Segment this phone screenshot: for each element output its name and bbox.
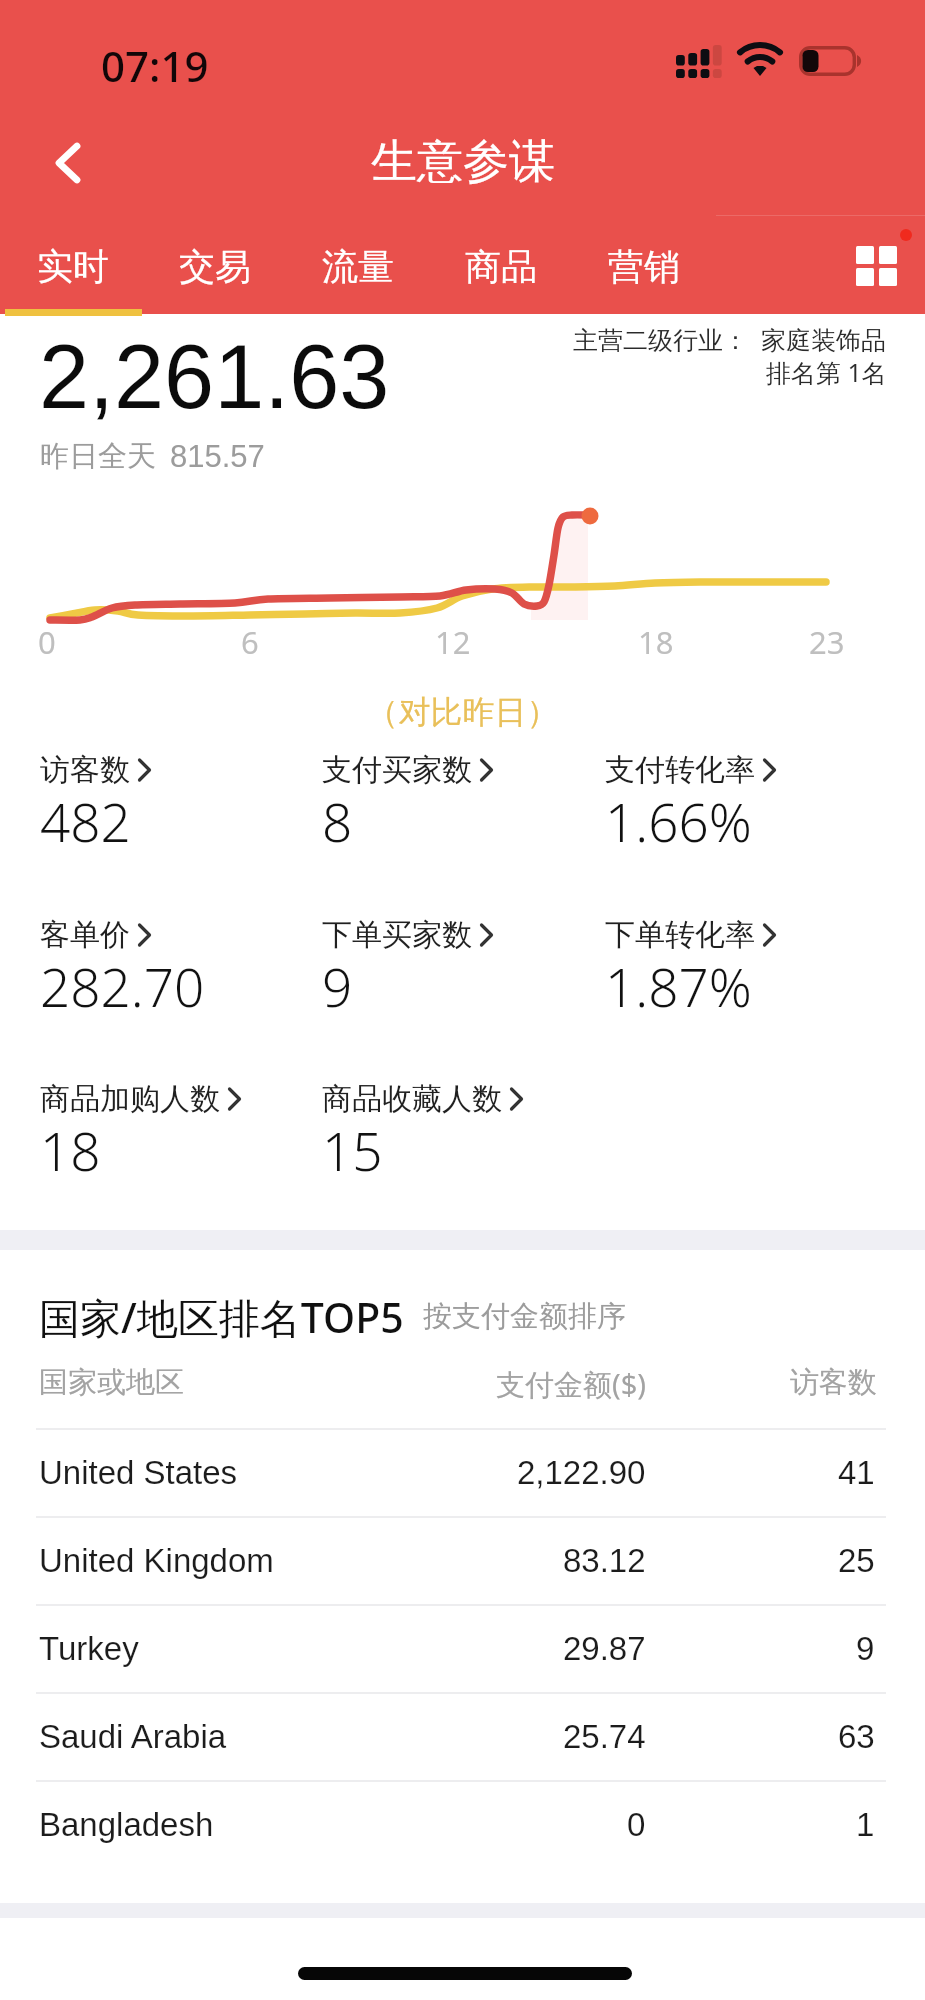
staticText: 1.87% (605, 950, 752, 1022)
staticText: Bangladesh (39, 1806, 214, 1843)
staticText: 营销 (608, 244, 680, 289)
staticText: Turkey (39, 1630, 139, 1667)
button[interactable]: 支付买家数 (322, 751, 597, 861)
button[interactable]: 商品 (431, 220, 571, 312)
staticText: 482 (40, 785, 131, 857)
staticText: 15 (322, 1114, 383, 1186)
staticText: United Kingdom (39, 1542, 274, 1579)
staticText: 访客数 (40, 751, 130, 789)
button[interactable]: 营销 (574, 220, 714, 312)
staticText: 主营二级行业： 家庭装饰品 (573, 322, 887, 356)
staticText: 国家/地区排名TOP5 (39, 1289, 404, 1345)
staticText: （对比昨日） (0, 692, 925, 732)
staticText: 29.87 (563, 1630, 646, 1667)
staticText: 排名第 1名 (766, 355, 887, 389)
staticText: 支付转化率 (605, 751, 755, 789)
staticText: 23 (809, 621, 845, 663)
button[interactable]: Saudi Arabia (0, 1692, 925, 1780)
button[interactable]: 商品收藏人数 (322, 1080, 597, 1190)
staticText: 9 (322, 950, 353, 1022)
button[interactable]: 实时 (3, 220, 143, 312)
staticText: 交易 (179, 244, 251, 289)
staticText: 昨日全天 (40, 438, 156, 475)
button[interactable]: 下单转化率 (605, 916, 880, 1026)
staticText: 2,122.90 (517, 1454, 646, 1491)
staticText: 支付买家数 (322, 751, 472, 789)
staticText: 282.70 (40, 950, 205, 1022)
staticText: 0 (627, 1806, 646, 1843)
staticText: 6 (241, 621, 259, 663)
staticText: 支付金额($) (496, 1364, 646, 1404)
staticText: 按支付金额排序 (423, 1298, 626, 1335)
staticText: 1 (856, 1806, 875, 1843)
button[interactable]: United States (0, 1428, 925, 1516)
staticText: 2,261.63 (39, 327, 390, 428)
staticText: 9 (856, 1630, 875, 1667)
staticText: 下单买家数 (322, 916, 472, 954)
staticText: 1.66% (605, 785, 752, 857)
staticText: 生意参谋 (371, 133, 555, 191)
staticText: 83.12 (563, 1542, 646, 1579)
staticText: 815.57 (170, 439, 265, 474)
staticText: 商品加购人数 (40, 1080, 220, 1118)
staticText: United States (39, 1454, 238, 1491)
staticText: 18 (638, 621, 674, 663)
staticText: 商品 (465, 244, 537, 289)
staticText: 流量 (322, 244, 394, 289)
button[interactable]: 商品加购人数 (40, 1080, 315, 1190)
button[interactable]: 支付转化率 (605, 751, 880, 861)
staticText: 63 (838, 1718, 875, 1755)
staticText: Saudi Arabia (39, 1718, 227, 1755)
button[interactable]: Back (25, 120, 111, 206)
staticText: 18 (40, 1114, 101, 1186)
staticText: 8 (322, 785, 353, 857)
button[interactable]: Turkey (0, 1604, 925, 1692)
button[interactable]: 客单价 (40, 916, 315, 1026)
staticText: 下单转化率 (605, 916, 755, 954)
staticText: 访客数 (790, 1364, 877, 1401)
button[interactable]: United Kingdom (0, 1516, 925, 1604)
staticText: 国家或地区 (39, 1364, 184, 1401)
staticText: 25 (838, 1542, 875, 1579)
button[interactable]: 流量 (288, 220, 428, 312)
staticText: 客单价 (40, 916, 130, 954)
staticText: 41 (838, 1454, 875, 1491)
staticText: 12 (435, 621, 471, 663)
button[interactable]: 下单买家数 (322, 916, 597, 1026)
button[interactable]: Bangladesh (0, 1780, 925, 1868)
staticText: 0 (38, 621, 56, 663)
staticText: 07:19 (101, 37, 209, 94)
staticText: 商品收藏人数 (322, 1080, 502, 1118)
staticText: 25.74 (563, 1718, 646, 1755)
staticText: 实时 (37, 244, 109, 289)
button[interactable]: Menu (832, 221, 922, 311)
button[interactable]: 访客数 (40, 751, 315, 861)
button[interactable]: 交易 (145, 220, 285, 312)
